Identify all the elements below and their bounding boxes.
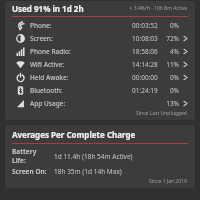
staticText: Wifi Active: — [30, 60, 65, 69]
staticText: Used 91% in 1d 2h — [12, 3, 84, 14]
staticText: 01:24:19 — [132, 86, 158, 95]
staticText: 0% — [158, 73, 179, 82]
button[interactable]: Phone: — [5, 19, 195, 32]
staticText: Bluetooth: — [30, 86, 63, 95]
staticText: 10:08:03 — [132, 34, 158, 43]
staticText: ⚡ 3.4%/h - 10h 8m Active — [129, 5, 188, 12]
button[interactable]: Wifi Active: — [5, 58, 195, 71]
staticText: Battery Life: — [12, 147, 50, 165]
staticText: Averages Per Complete Charge — [12, 129, 136, 140]
staticText: 00:03:52 — [132, 21, 158, 30]
staticText: 00:00:00 — [132, 73, 158, 82]
button[interactable]: Bluetooth: — [5, 84, 195, 97]
staticText: 18:58:06 — [132, 47, 158, 56]
button[interactable]: Screen: — [5, 32, 195, 45]
staticText: App Usage: — [30, 99, 66, 108]
staticText: 4% — [158, 47, 179, 56]
staticText: 72% — [158, 34, 179, 43]
staticText: 14:14:28 — [132, 60, 158, 69]
staticText: Phone: — [30, 21, 52, 30]
staticText: 0% — [158, 86, 179, 95]
staticText: Since Last Unplugged — [136, 110, 187, 117]
staticText: 18h 35m (1d 14h Max) — [54, 167, 122, 176]
staticText: Held Awake: — [30, 73, 69, 82]
staticText: Screen: — [30, 34, 53, 43]
staticText: Screen On: — [12, 167, 47, 176]
staticText: Phone Radio: — [30, 47, 71, 56]
button[interactable]: Held Awake: — [5, 71, 195, 84]
staticText: 1d 11.4h (18h 54m Active) — [54, 152, 133, 161]
staticText: 13% — [158, 99, 179, 108]
staticText: 0% — [158, 21, 179, 30]
staticText: 11% — [158, 60, 179, 69]
button[interactable]: Phone Radio: — [5, 45, 195, 58]
button[interactable]: App Usage: — [5, 97, 195, 110]
staticText: Since 1 Jan 2019 — [149, 178, 187, 185]
